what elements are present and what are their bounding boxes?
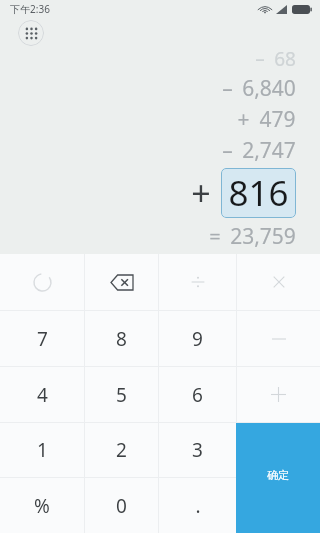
button[interactable]: 9 [159,311,236,366]
button[interactable]: . [159,478,236,533]
staticText: . [195,493,201,519]
button[interactable]: Apps [18,20,44,46]
staticText: + [191,170,211,216]
button[interactable]: 1 [0,423,84,477]
button[interactable]: 8 [85,311,158,366]
staticText: 3 [192,437,203,463]
staticText: 确定 [267,468,289,482]
staticText: 6,840 [242,74,296,103]
button[interactable]: 2 [85,423,158,477]
button[interactable]: 5 [85,367,158,422]
button[interactable]: Plus [237,367,320,422]
button[interactable]: 3 [159,423,236,477]
staticText: + [237,105,250,134]
staticText: – [255,46,265,72]
other: Divide [190,275,206,289]
staticText: % [34,493,50,519]
button[interactable]: 4 [0,367,84,422]
staticText: 0 [116,493,127,519]
other: Multiply [272,275,286,289]
staticText: 7 [37,326,48,352]
button[interactable]: % [0,478,84,533]
button[interactable]: 0 [85,478,158,533]
button[interactable]: 7 [0,311,84,366]
staticText: – [222,136,233,165]
staticText: 23,759 [230,222,296,251]
button[interactable]: 6 [159,367,236,422]
button[interactable]: Backspace [85,254,158,310]
staticText: 479 [259,105,296,134]
staticText: 816 [228,169,289,217]
staticText: 4 [37,382,48,408]
staticText: 5 [116,382,127,408]
staticText: 1 [37,437,48,463]
staticText: 2 [116,437,127,463]
staticText: 8 [116,326,127,352]
staticText: 68 [274,46,296,72]
button[interactable]: Clear [0,254,84,310]
staticText: = [209,223,221,250]
staticText: 6 [192,382,203,408]
staticText: – [222,74,233,103]
staticText: 下午2:36 [10,2,50,16]
other: Plus [271,387,286,402]
staticText: 9 [192,326,203,352]
button[interactable]: 确定 [236,423,320,533]
staticText: 2,747 [242,136,296,165]
other: Backspace [111,275,133,290]
other: Clear [34,274,51,291]
